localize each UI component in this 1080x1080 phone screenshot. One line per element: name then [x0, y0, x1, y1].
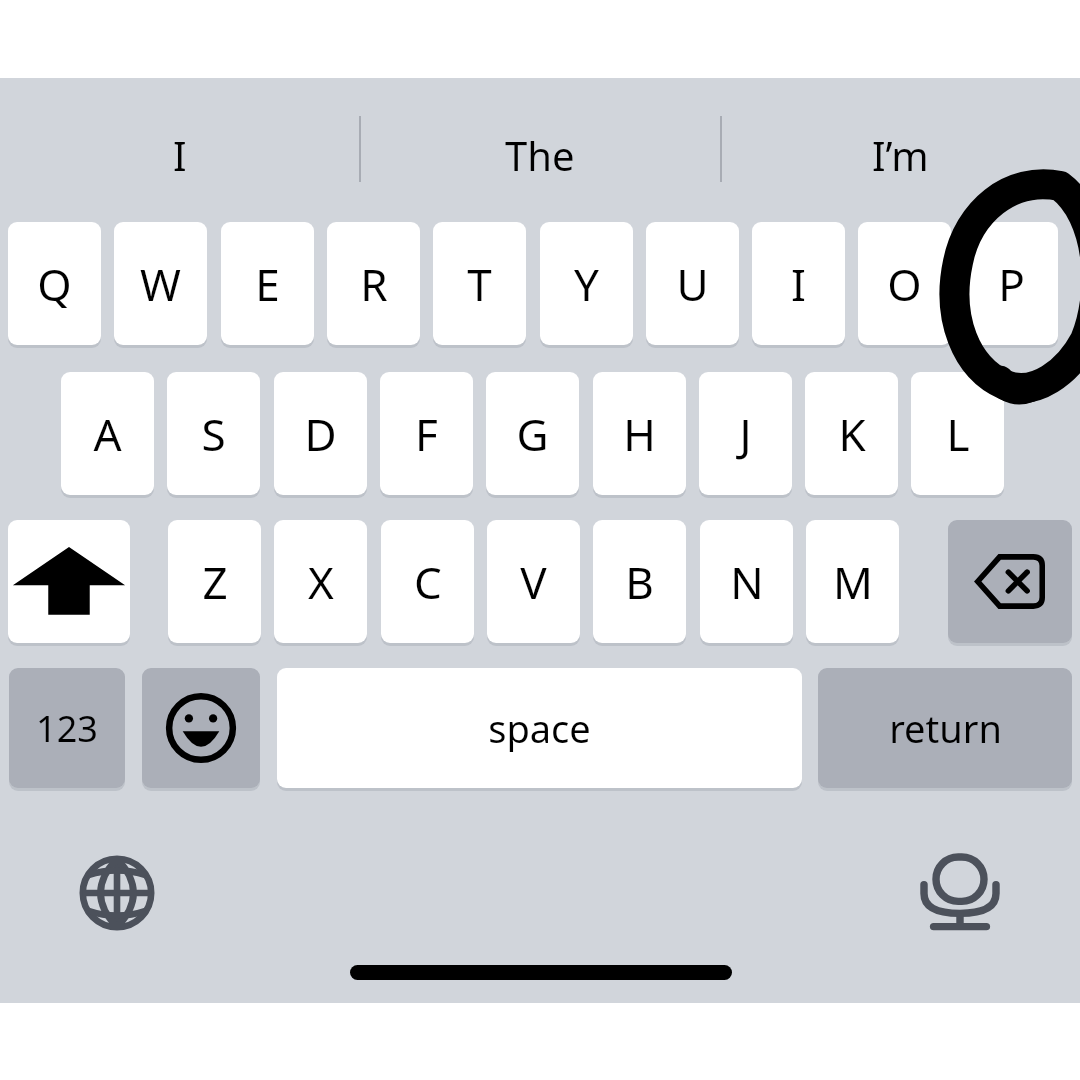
staticText: B [625, 552, 654, 612]
staticText: M [833, 552, 873, 612]
button[interactable]: Shift [8, 520, 130, 643]
staticText: E [255, 254, 280, 314]
staticText: Q [37, 254, 72, 314]
button[interactable]: space [277, 668, 802, 788]
button[interactable]: S [167, 372, 260, 495]
button[interactable]: D [274, 372, 367, 495]
staticText: F [415, 404, 438, 464]
button[interactable]: C [381, 520, 474, 643]
button[interactable]: Y [540, 222, 633, 345]
button[interactable]: I’m [720, 128, 1080, 180]
button[interactable]: N [700, 520, 793, 643]
staticText: space [488, 702, 591, 754]
button[interactable]: U [646, 222, 739, 345]
staticText: C [414, 552, 442, 612]
button[interactable]: T [433, 222, 526, 345]
button[interactable]: 123 [9, 668, 125, 788]
button[interactable]: The [359, 128, 720, 180]
staticText: O [887, 254, 922, 314]
staticText: L [946, 404, 970, 464]
button[interactable]: W [114, 222, 207, 345]
staticText: Y [574, 254, 599, 314]
button[interactable]: M [806, 520, 899, 643]
button[interactable]: E [221, 222, 314, 345]
button[interactable]: G [486, 372, 579, 495]
button[interactable]: Switch keyboard [57, 833, 177, 953]
staticText: K [838, 404, 866, 464]
button[interactable]: P [965, 222, 1058, 345]
button[interactable]: Emoji [142, 668, 260, 788]
staticText: U [676, 254, 709, 314]
button[interactable]: K [805, 372, 898, 495]
button[interactable]: J [699, 372, 792, 495]
staticText: R [360, 254, 388, 314]
button[interactable]: Backspace [948, 520, 1072, 643]
staticText: N [730, 552, 764, 612]
button[interactable]: R [327, 222, 420, 345]
button[interactable]: A [61, 372, 154, 495]
staticText: G [516, 404, 549, 464]
staticText: D [304, 404, 337, 464]
button[interactable]: B [593, 520, 686, 643]
staticText: J [739, 404, 752, 464]
button[interactable]: I [0, 128, 359, 180]
staticText: I’m [872, 128, 929, 180]
staticText: S [201, 404, 226, 464]
staticText: W [140, 254, 181, 314]
button[interactable]: O [858, 222, 951, 345]
staticText: I [791, 254, 806, 314]
button[interactable]: X [274, 520, 367, 643]
staticText: I [173, 128, 187, 180]
staticText: H [623, 404, 656, 464]
staticText: 123 [36, 704, 98, 753]
staticText: V [520, 552, 547, 612]
staticText: A [93, 404, 122, 464]
button[interactable]: Q [8, 222, 101, 345]
staticText: Z [202, 552, 228, 612]
button[interactable]: F [380, 372, 473, 495]
staticText: P [998, 254, 1025, 314]
button[interactable]: V [487, 520, 580, 643]
button[interactable]: Z [168, 520, 261, 643]
staticText: X [308, 552, 334, 612]
staticText: return [889, 702, 1002, 754]
staticText: T [467, 254, 492, 314]
button[interactable]: Dictate [900, 833, 1020, 953]
button[interactable]: return [818, 668, 1072, 788]
button[interactable]: H [593, 372, 686, 495]
button[interactable]: I [752, 222, 845, 345]
button[interactable]: L [911, 372, 1004, 495]
staticText: The [505, 128, 575, 180]
